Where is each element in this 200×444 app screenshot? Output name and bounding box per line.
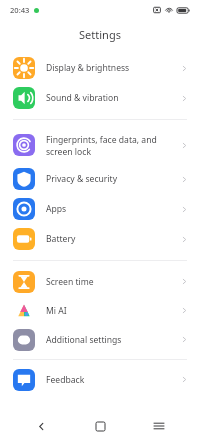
button[interactable]: Back bbox=[23, 412, 59, 440]
staticText: 20:43 bbox=[10, 5, 30, 15]
button[interactable]: Privacy & security bbox=[0, 164, 200, 194]
staticText: Sound & vibration bbox=[46, 92, 174, 104]
staticText: Battery bbox=[46, 233, 174, 245]
staticText: Screen time bbox=[46, 276, 174, 288]
staticText: Additional settings bbox=[46, 334, 174, 346]
staticText: Display & brightness bbox=[46, 62, 174, 74]
staticText: Privacy & security bbox=[46, 173, 174, 185]
staticText: Feedback bbox=[46, 374, 174, 386]
button[interactable]: Home bbox=[82, 412, 118, 440]
staticText: Mi AI bbox=[46, 305, 174, 317]
staticText: Apps bbox=[46, 203, 174, 215]
button[interactable]: Recent apps bbox=[141, 412, 177, 440]
button[interactable]: Feedback bbox=[0, 365, 200, 394]
button[interactable]: Screen time bbox=[0, 267, 200, 296]
button[interactable]: Battery bbox=[0, 224, 200, 254]
button[interactable]: Mi AI bbox=[0, 296, 200, 325]
button[interactable]: Apps bbox=[0, 194, 200, 224]
staticText: Settings bbox=[79, 27, 121, 42]
button[interactable]: Additional settings bbox=[0, 325, 200, 354]
button[interactable]: Display & brightness bbox=[0, 53, 200, 83]
button[interactable]: Fingerprints, face data, and screen lock bbox=[0, 126, 200, 164]
staticText: Fingerprints, face data, and screen lock bbox=[46, 134, 174, 157]
button[interactable]: Sound & vibration bbox=[0, 83, 200, 113]
